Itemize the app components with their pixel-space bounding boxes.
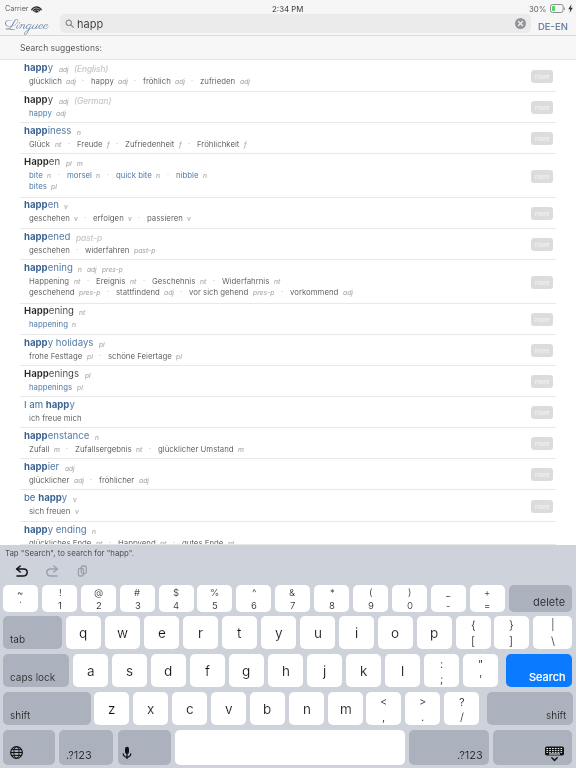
- button[interactable]: happier: [0, 459, 576, 490]
- button[interactable]: <: [366, 692, 401, 725]
- button[interactable]: happen: [0, 197, 576, 229]
- button[interactable]: Paste: [73, 562, 91, 582]
- button[interactable]: I am happy: [0, 397, 576, 428]
- button[interactable]: Dictate: [118, 730, 171, 765]
- button[interactable]: Hide keyboard: [493, 730, 572, 765]
- button[interactable]: Happenings: [0, 366, 576, 397]
- button[interactable]: n: [289, 692, 324, 725]
- button[interactable]: k: [346, 654, 381, 687]
- button[interactable]: @: [81, 585, 116, 612]
- button[interactable]: more: [531, 276, 553, 289]
- button[interactable]: Happen: [0, 154, 576, 198]
- button[interactable]: happy ending: [0, 522, 576, 545]
- staticText: happening: [29, 319, 68, 328]
- button[interactable]: i: [339, 616, 374, 649]
- button[interactable]: l: [385, 654, 420, 687]
- button[interactable]: .?123: [59, 730, 113, 765]
- button[interactable]: _: [431, 585, 466, 612]
- button[interactable]: (: [353, 585, 388, 612]
- button[interactable]: #: [120, 585, 155, 612]
- button[interactable]: more: [531, 344, 553, 357]
- button[interactable]: ": [463, 654, 498, 687]
- button[interactable]: be happy: [0, 490, 576, 522]
- button[interactable]: more: [531, 375, 553, 388]
- button[interactable]: v: [211, 692, 246, 725]
- button[interactable]: more: [531, 170, 553, 183]
- button[interactable]: happ: [60, 14, 531, 33]
- button[interactable]: ~: [3, 585, 38, 612]
- button[interactable]: more: [531, 468, 553, 481]
- button[interactable]: |: [533, 616, 572, 649]
- button[interactable]: w: [105, 616, 140, 649]
- button[interactable]: shift: [487, 692, 573, 725]
- button[interactable]: more: [531, 437, 553, 450]
- button[interactable]: z: [94, 692, 129, 725]
- button[interactable]: Undo: [13, 562, 31, 582]
- button[interactable]: m: [328, 692, 363, 725]
- button[interactable]: Redo: [43, 562, 61, 582]
- button[interactable]: delete: [509, 585, 572, 612]
- button[interactable]: Clear text: [515, 18, 526, 29]
- button[interactable]: u: [300, 616, 335, 649]
- button[interactable]: {: [456, 616, 491, 649]
- button[interactable]: x: [133, 692, 168, 725]
- button[interactable]: a: [73, 654, 108, 687]
- button[interactable]: more: [531, 238, 553, 251]
- staticText: @: [94, 587, 104, 598]
- button[interactable]: f: [190, 654, 225, 687]
- button[interactable]: s: [112, 654, 147, 687]
- button[interactable]: happy holidays: [0, 335, 576, 366]
- button[interactable]: y: [261, 616, 296, 649]
- button[interactable]: }: [494, 616, 529, 649]
- button[interactable]: Happening: [0, 303, 576, 335]
- button[interactable]: &: [275, 585, 310, 612]
- button[interactable]: $: [159, 585, 194, 612]
- button[interactable]: happiness: [0, 123, 576, 154]
- button[interactable]: more: [531, 101, 553, 114]
- button[interactable]: b: [250, 692, 285, 725]
- button[interactable]: :: [424, 654, 459, 687]
- button[interactable]: happening: [0, 260, 576, 304]
- button[interactable]: ): [392, 585, 427, 612]
- button[interactable]: more: [531, 406, 553, 419]
- button[interactable]: tab: [3, 616, 62, 649]
- button[interactable]: q: [66, 616, 101, 649]
- button[interactable]: caps lock: [3, 654, 69, 687]
- button[interactable]: c: [172, 692, 207, 725]
- button[interactable]: shift: [3, 692, 91, 725]
- button[interactable]: !: [42, 585, 77, 612]
- button[interactable]: more: [531, 70, 553, 83]
- button[interactable]: more: [531, 207, 553, 220]
- button[interactable]: o: [378, 616, 413, 649]
- button[interactable]: +: [470, 585, 505, 612]
- staticText: ·: [149, 444, 152, 452]
- button[interactable]: Search: [506, 654, 572, 687]
- button[interactable]: d: [151, 654, 186, 687]
- button[interactable]: more: [531, 132, 553, 145]
- button[interactable]: h: [268, 654, 303, 687]
- button[interactable]: more: [531, 313, 553, 326]
- button[interactable]: ?: [444, 692, 479, 725]
- staticText: n: [47, 171, 52, 179]
- button[interactable]: .?123: [409, 730, 489, 765]
- button[interactable]: j: [307, 654, 342, 687]
- button[interactable]: r: [183, 616, 218, 649]
- button[interactable]: t: [222, 616, 257, 649]
- button[interactable]: happened: [0, 229, 576, 260]
- button[interactable]: *: [314, 585, 349, 612]
- button[interactable]: happy: [0, 60, 576, 92]
- button[interactable]: >: [405, 692, 440, 725]
- button[interactable]: happenstance: [0, 428, 576, 459]
- button[interactable]: Linguee: [5, 16, 49, 35]
- button[interactable]: happy: [0, 92, 576, 123]
- button[interactable]: e: [144, 616, 179, 649]
- button[interactable]: more: [531, 500, 553, 513]
- staticText: _: [446, 587, 451, 598]
- button[interactable]: Switch keyboard: [3, 730, 55, 765]
- button[interactable]: %: [197, 585, 232, 612]
- button[interactable]: ^: [236, 585, 271, 612]
- button[interactable]: p: [417, 616, 452, 649]
- button[interactable]: DE-EN: [537, 18, 569, 35]
- button[interactable]: g: [229, 654, 264, 687]
